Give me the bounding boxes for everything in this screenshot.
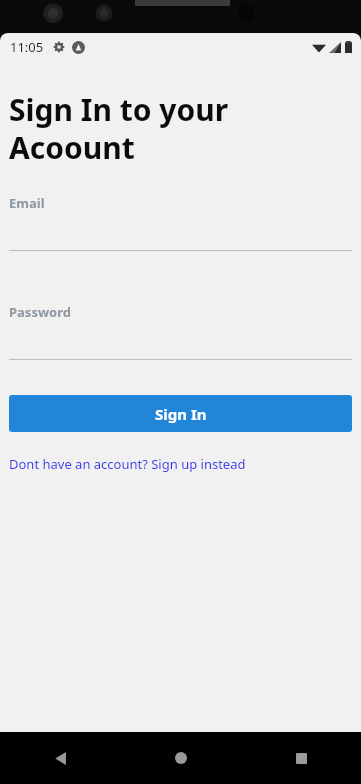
button[interactable]: Home	[121, 732, 241, 784]
staticText: Email	[9, 194, 45, 212]
button[interactable]: Recent apps	[241, 732, 361, 784]
staticText: 11:05	[10, 38, 44, 56]
staticText: Sign In to your Acoount	[9, 89, 352, 168]
staticText: Sign In	[155, 404, 207, 424]
button[interactable]: Sign In	[9, 395, 352, 432]
button[interactable]: Back	[0, 732, 121, 784]
staticText: Dont have an account? Sign up instead	[9, 455, 246, 473]
button[interactable]: Dont have an account? Sign up instead	[9, 453, 246, 475]
staticText: Password	[9, 303, 71, 321]
